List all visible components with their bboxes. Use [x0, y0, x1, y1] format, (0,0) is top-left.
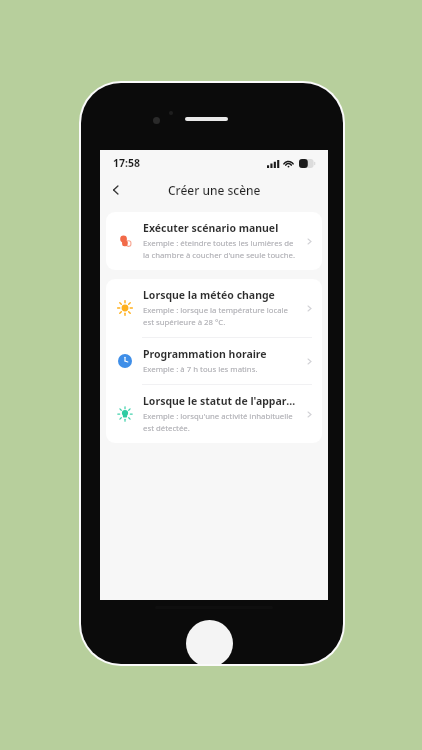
- staticText: est détectée.: [143, 423, 190, 434]
- staticText: Lorsque le statut de l'appareil c...: [143, 394, 301, 408]
- button[interactable]: Exécuter scénario manuel: [106, 212, 322, 270]
- staticText: Exécuter scénario manuel: [143, 221, 279, 235]
- staticText: Exemple : éteindre toutes les lumières d…: [143, 238, 294, 249]
- staticText: 17:58: [113, 156, 140, 170]
- staticText: Programmation horaire: [143, 347, 267, 361]
- staticText: la chambre à coucher d'une seule touche.: [143, 250, 295, 261]
- button[interactable]: Retour: [103, 177, 129, 203]
- staticText: est supérieure à 28 °C.: [143, 317, 226, 328]
- staticText: Exemple : à 7 h tous les matins.: [143, 364, 258, 375]
- staticText: Exemple : lorsque la température locale: [143, 305, 288, 316]
- button[interactable]: Lorsque la météo change: [106, 279, 322, 337]
- staticText: Lorsque la météo change: [143, 288, 275, 302]
- button[interactable]: Lorsque le statut de l'appareil c...: [106, 385, 322, 443]
- button[interactable]: Programmation horaire: [106, 338, 322, 384]
- staticText: Exemple : lorsqu'une activité inhabituel…: [143, 411, 293, 422]
- staticText: Créer une scène: [168, 182, 261, 198]
